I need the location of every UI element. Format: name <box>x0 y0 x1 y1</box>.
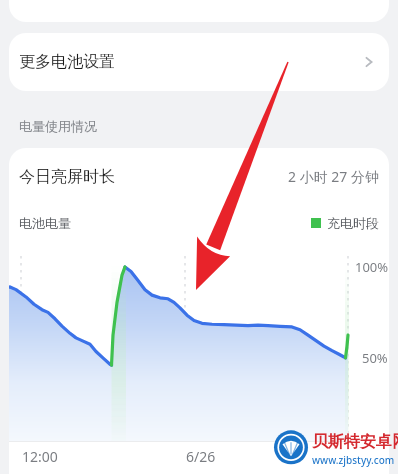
staticText: 贝斯特安卓网 <box>312 432 398 452</box>
staticText: 充电时段 <box>327 215 379 231</box>
staticText: 12:00 <box>22 447 58 466</box>
staticText: 50% <box>362 349 388 367</box>
staticText: 电量使用情况 <box>19 118 97 134</box>
staticText: 更多电池设置 <box>19 52 115 72</box>
button[interactable]: 今日亮屏时长 <box>9 148 389 205</box>
staticText: 2 小时 27 分钟 <box>288 167 379 186</box>
staticText: 电池电量 <box>19 215 71 231</box>
staticText: 6/26 <box>186 447 216 466</box>
staticText: 今日亮屏时长 <box>19 167 115 187</box>
staticText: www.zjbstyy.com <box>312 453 395 467</box>
staticText: 100% <box>355 258 389 276</box>
button[interactable]: 更多电池设置 <box>9 33 389 91</box>
other: Watermark <box>272 428 396 472</box>
